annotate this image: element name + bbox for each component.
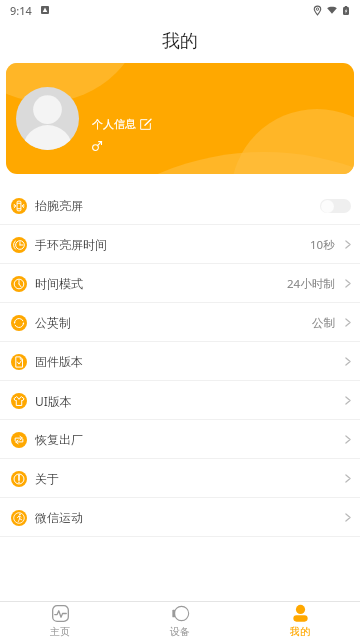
staticText: 9:14 — [10, 3, 32, 18]
button[interactable]: 主页 — [0, 602, 120, 640]
staticText: 24小时制 — [287, 276, 335, 292]
staticText: 设备 — [170, 625, 190, 638]
staticText: 关于 — [35, 471, 59, 486]
button[interactable]: 恢复出厂 — [0, 420, 360, 459]
staticText: 公英制 — [35, 315, 71, 330]
staticText: 10秒 — [310, 237, 335, 253]
staticText: 抬腕亮屏 — [35, 198, 83, 213]
staticText: 微信运动 — [35, 510, 83, 525]
staticText: 手环亮屏时间 — [35, 237, 107, 252]
staticText: 公制 — [312, 316, 335, 330]
button[interactable]: 个人信息 — [6, 63, 354, 174]
button[interactable]: UI版本 — [0, 381, 360, 420]
staticText: 恢复出厂 — [35, 432, 83, 447]
button[interactable]: 设备 — [120, 602, 240, 640]
staticText: 我的 — [290, 625, 310, 638]
button[interactable]: 关于 — [0, 459, 360, 498]
button[interactable]: 手环亮屏时间 — [0, 225, 360, 264]
staticText: 个人信息 — [92, 117, 136, 131]
other: Toggle wrist raise — [320, 199, 351, 213]
button[interactable]: 时间模式 — [0, 264, 360, 303]
staticText: 固件版本 — [35, 354, 83, 369]
button[interactable]: 固件版本 — [0, 342, 360, 381]
staticText: 主页 — [50, 625, 70, 638]
button[interactable]: 我的 — [240, 602, 360, 640]
staticText: UI版本 — [35, 393, 72, 409]
button[interactable]: 公英制 — [0, 303, 360, 342]
other: Edit profile — [140, 119, 151, 130]
staticText: 我的 — [162, 30, 198, 53]
button[interactable]: 抬腕亮屏 — [0, 186, 360, 225]
staticText: 时间模式 — [35, 276, 83, 291]
button[interactable]: 微信运动 — [0, 498, 360, 537]
